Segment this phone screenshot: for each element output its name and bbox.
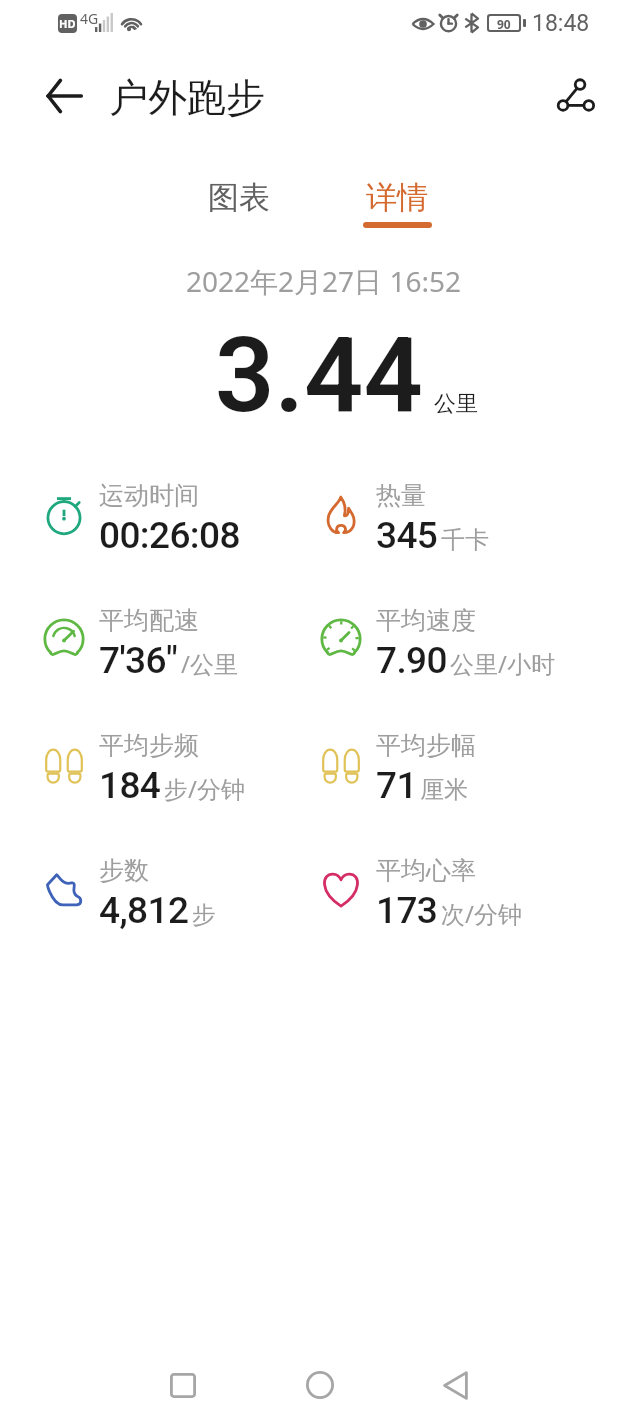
staticText: 18:48 [532,10,590,37]
staticText: 7'36" [99,639,178,682]
staticText: 90 [497,16,511,30]
staticText: 平均步幅 [376,730,476,761]
staticText: 4,812 [99,889,189,932]
staticText: 户外跑步 [109,73,265,122]
staticText: 公里/小时 [450,647,555,680]
button[interactable]: 详情 [333,166,461,240]
staticText: 步 [192,900,216,930]
staticText: 平均步频 [99,730,199,761]
button[interactable]: 平均配速 [42,596,320,698]
staticText: 次/分钟 [441,897,522,930]
staticText: 平均心率 [376,855,476,886]
button[interactable]: Back [36,68,92,124]
staticText: 步数 [99,855,149,886]
button[interactable]: Recent apps [137,1339,229,1422]
button[interactable]: 平均速度 [319,596,597,698]
button[interactable]: 平均步幅 [319,721,597,823]
staticText: 千卡 [441,525,489,555]
staticText: 厘米 [420,775,468,805]
staticText: 公里 [434,390,478,418]
button[interactable]: 运动时间 [42,471,320,573]
staticText: 图表 [208,178,270,217]
staticText: 运动时间 [99,480,199,511]
staticText: 173 [376,889,438,932]
staticText: 详情 [366,178,428,217]
button[interactable]: Back [409,1339,501,1422]
button[interactable]: Home [274,1339,366,1422]
staticText: 7.90 [376,639,447,682]
staticText: 345 [376,514,438,557]
staticText: 4G [80,9,99,28]
staticText: 00:26:08 [99,514,240,557]
button[interactable]: 步数 [42,846,320,948]
staticText: /公里 [181,647,238,680]
button[interactable]: 平均步频 [42,721,320,823]
staticText: 2022年2月27日 16:52 [186,262,461,300]
staticText: 步/分钟 [164,772,245,805]
staticText: HD [59,16,76,31]
staticText: 平均配速 [99,605,199,636]
staticText: 平均速度 [376,605,476,636]
button[interactable]: 热量 [319,471,597,573]
button[interactable]: Share [545,65,605,125]
button[interactable]: 图表 [175,166,303,240]
staticText: 184 [99,764,161,807]
staticText: 3.44 [215,315,423,437]
button[interactable]: 平均心率 [319,846,597,948]
staticText: 71 [376,764,417,807]
staticText: 热量 [376,480,426,511]
